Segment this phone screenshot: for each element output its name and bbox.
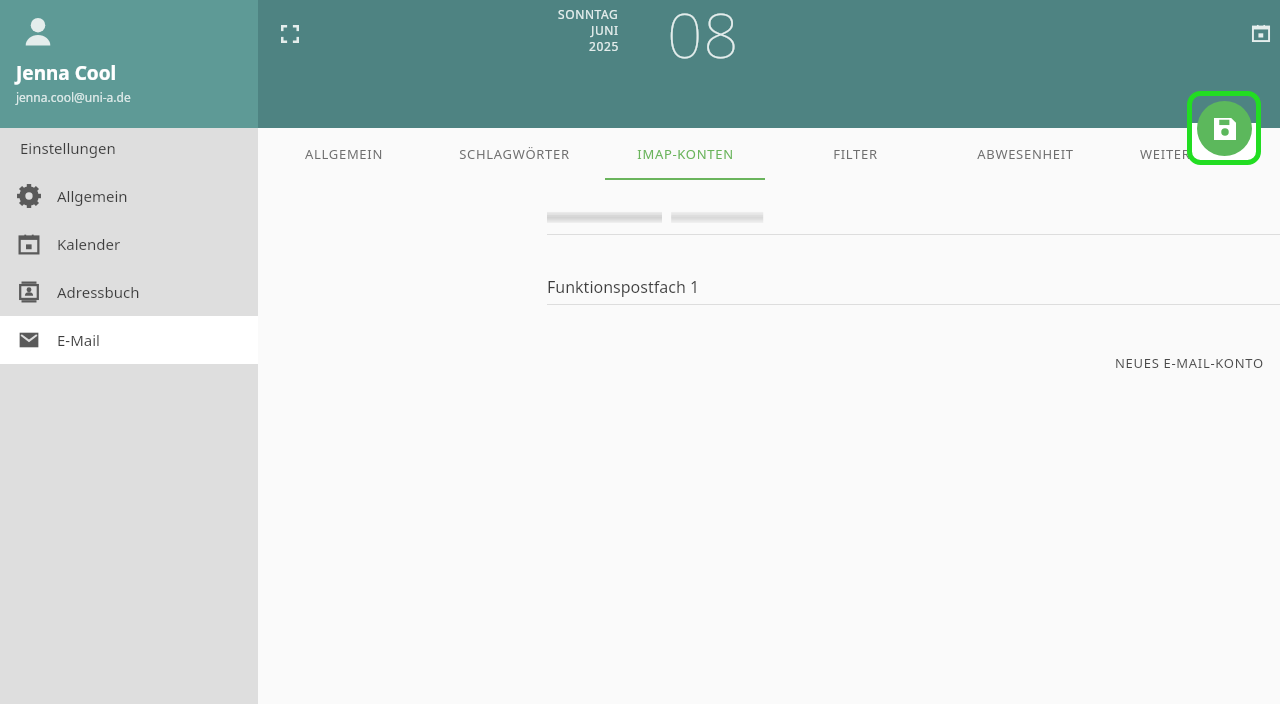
- staticText: 08: [667, 0, 740, 76]
- staticText: SONNTAG: [558, 6, 619, 22]
- button[interactable]: Allgemein: [0, 172, 258, 220]
- staticText: FILTER: [833, 145, 878, 163]
- button[interactable]: Adressbuch: [0, 268, 258, 316]
- staticText: Adressbuch: [57, 282, 140, 302]
- button[interactable]: Speichern: [1197, 101, 1252, 156]
- button[interactable]: FILTER: [770, 128, 940, 180]
- staticText: Allgemein: [57, 186, 128, 206]
- staticText: Einstellungen: [20, 138, 116, 158]
- button[interactable]: SCHLAGWÖRTER: [429, 128, 600, 180]
- button[interactable]: WEITERLEITUNG: [1110, 128, 1280, 180]
- button[interactable]: Jenna Cool: [0, 0, 258, 128]
- staticText: 2025: [589, 38, 619, 54]
- button[interactable]: Kalender: [1242, 14, 1280, 52]
- staticText: Kalender: [57, 234, 121, 254]
- staticText: Jenna Cool: [16, 60, 117, 86]
- staticText: E-Mail: [57, 330, 100, 350]
- staticText: IMAP-KONTEN: [637, 145, 734, 163]
- button[interactable]: Kalender: [0, 220, 258, 268]
- staticText: WEITERLEITUNG: [1140, 145, 1250, 163]
- button[interactable]: ALLGEMEIN: [258, 128, 429, 180]
- button[interactable]: Vollbild: [272, 16, 308, 52]
- staticText: ABWESENHEIT: [977, 145, 1074, 163]
- staticText: Funktionspostfach 1: [547, 276, 700, 298]
- staticText: NEUES E-MAIL-KONTO: [1115, 354, 1264, 372]
- button[interactable]: NEUES E-MAIL-KONTO: [1099, 348, 1280, 378]
- button[interactable]: IMAP-KONTEN: [600, 128, 770, 180]
- staticText: SCHLAGWÖRTER: [459, 145, 570, 163]
- staticText: JUNI: [591, 22, 619, 38]
- staticText: jenna.cool@uni-a.de: [16, 89, 131, 105]
- button[interactable]: E-Mail: [0, 316, 258, 364]
- staticText: ALLGEMEIN: [305, 145, 383, 163]
- button[interactable]: ABWESENHEIT: [940, 128, 1110, 180]
